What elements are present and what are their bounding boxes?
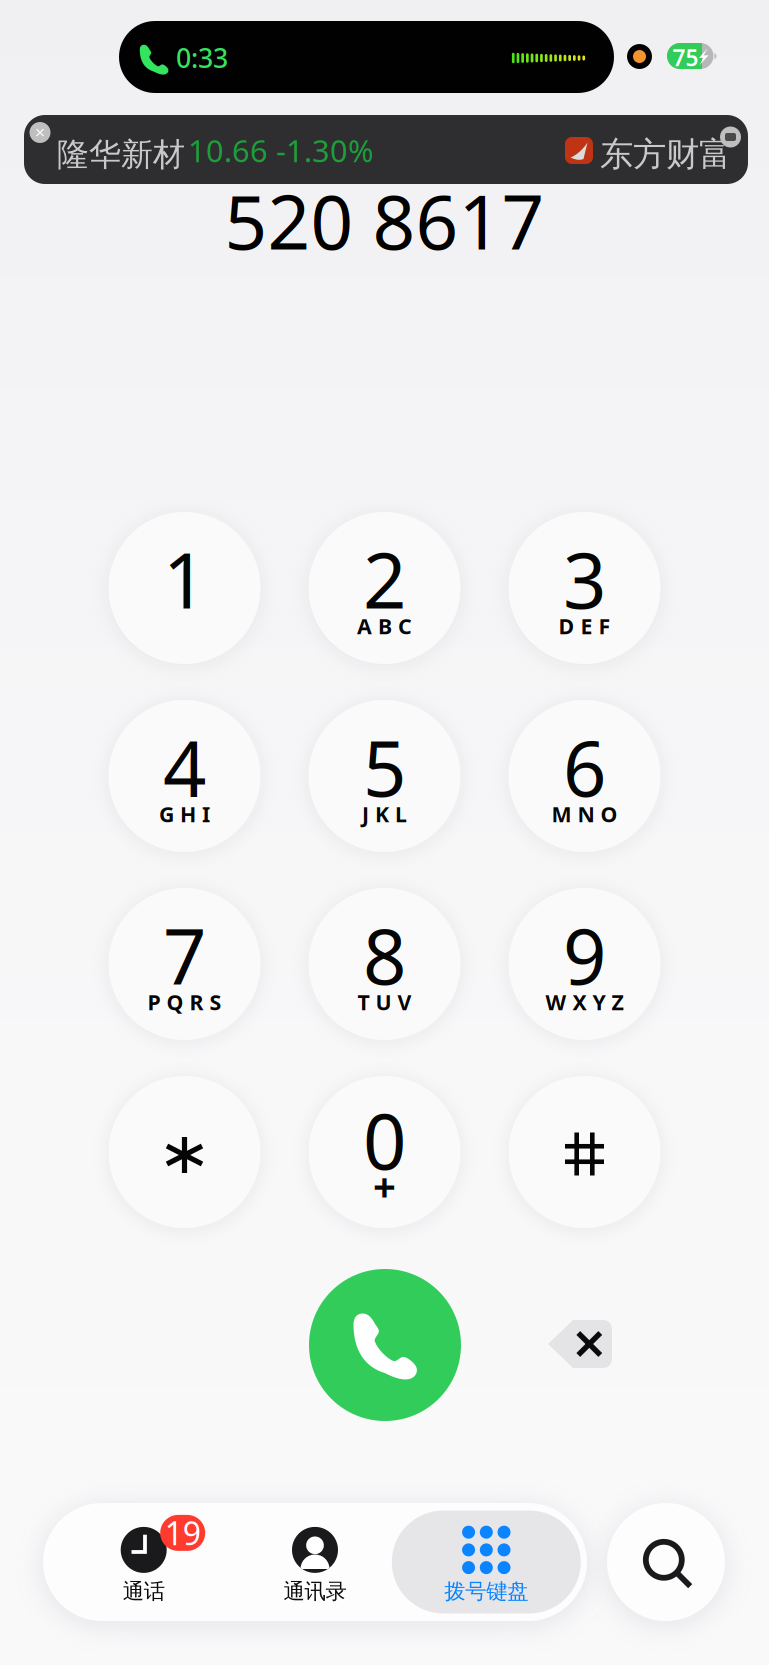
- staticText: 19: [165, 1512, 201, 1554]
- staticText: 6: [563, 716, 606, 817]
- button[interactable]: [108, 1076, 260, 1228]
- button[interactable]: Dismiss: [29, 122, 50, 143]
- button[interactable]: 19: [58, 1503, 229, 1621]
- staticText: M N O: [551, 800, 617, 828]
- staticText: G H I: [159, 800, 210, 828]
- button[interactable]: 9: [508, 888, 660, 1040]
- button[interactable]: Open app: [720, 126, 741, 147]
- staticText: 5: [363, 716, 406, 817]
- button[interactable]: 5: [308, 700, 460, 852]
- staticText: P Q R S: [147, 988, 221, 1016]
- button[interactable]: 拨号键盘: [401, 1503, 572, 1621]
- button[interactable]: 通讯录: [229, 1503, 401, 1621]
- staticText: +: [373, 1159, 396, 1212]
- staticText: D E F: [558, 612, 610, 640]
- staticText: A B C: [357, 612, 412, 640]
- button[interactable]: 2: [308, 512, 460, 664]
- button[interactable]: Delete: [548, 1320, 612, 1368]
- staticText: 0: [363, 1089, 406, 1190]
- button[interactable]: Search: [607, 1503, 725, 1621]
- button[interactable]: 1: [108, 512, 260, 664]
- button[interactable]: 4: [108, 700, 260, 852]
- button[interactable]: 6: [508, 700, 660, 852]
- staticText: 1: [163, 528, 206, 629]
- staticText: 4: [163, 716, 206, 817]
- staticText: 隆华新材: [57, 135, 185, 174]
- button[interactable]: [508, 1076, 660, 1228]
- staticText: 7: [163, 904, 206, 1005]
- button[interactable]: 7: [108, 888, 260, 1040]
- staticText: 3: [563, 528, 606, 629]
- staticText: 2: [363, 528, 406, 629]
- button[interactable]: Call: [309, 1269, 461, 1421]
- staticText: 8: [363, 904, 406, 1005]
- staticText: 通话: [123, 1578, 165, 1605]
- staticText: 通讯录: [283, 1578, 346, 1605]
- staticText: W X Y Z: [545, 988, 623, 1016]
- staticText: T U V: [357, 988, 411, 1016]
- staticText: 10.66 -1.30%: [188, 130, 373, 171]
- staticText: 520 8617: [224, 171, 544, 270]
- button[interactable]: 8: [308, 888, 460, 1040]
- staticText: 东方财富: [600, 134, 732, 175]
- button[interactable]: 3: [508, 512, 660, 664]
- staticText: 0:33: [176, 40, 228, 75]
- staticText: J K L: [362, 800, 407, 828]
- button[interactable]: 0: [308, 1076, 460, 1228]
- staticText: 9: [563, 904, 606, 1005]
- staticText: 75: [672, 42, 698, 72]
- staticText: 拨号键盘: [444, 1578, 528, 1605]
